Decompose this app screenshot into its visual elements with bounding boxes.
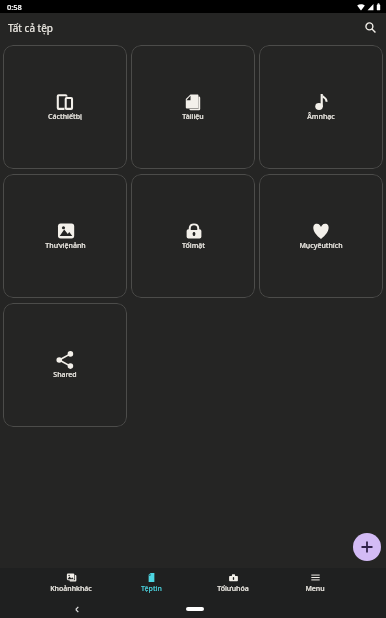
staticText: Các​thiết​bị	[48, 112, 82, 122]
other: Back	[74, 605, 80, 614]
staticText: Shared	[53, 370, 77, 380]
staticText: Tối​ưu​hóa	[217, 584, 249, 594]
button[interactable]: Mục​yêu​thích	[259, 174, 383, 298]
staticText: Tối​mật	[182, 241, 205, 251]
button[interactable]: Tệp​tin	[111, 568, 192, 600]
button[interactable]: Tối​ưu​hóa	[192, 568, 274, 600]
staticText: Âm​nhạc	[307, 112, 335, 122]
staticText: Tất cả tệp	[8, 21, 53, 35]
staticText: 0:58	[7, 2, 22, 12]
button[interactable]: Menu	[274, 568, 356, 600]
staticText: Menu	[305, 584, 325, 594]
button[interactable]: Tài​liệu	[131, 45, 255, 169]
staticText: Kho​ảnh​khác	[50, 584, 92, 594]
button[interactable]: Âm​nhạc	[259, 45, 383, 169]
button[interactable]: Thư​viện​ảnh	[3, 174, 127, 298]
button[interactable]: Search	[358, 15, 382, 39]
button[interactable]: Kho​ảnh​khác	[30, 568, 111, 600]
button[interactable]: Các​thiết​bị	[3, 45, 127, 169]
button[interactable]: Add	[353, 533, 381, 561]
staticText: Mục​yêu​thích	[299, 241, 343, 251]
button[interactable]: Shared	[3, 303, 127, 427]
staticText: Tệp​tin	[141, 584, 162, 594]
staticText: Thư​viện​ảnh	[45, 241, 86, 251]
staticText: Tài​liệu	[182, 112, 204, 122]
button[interactable]: Tối​mật	[131, 174, 255, 298]
